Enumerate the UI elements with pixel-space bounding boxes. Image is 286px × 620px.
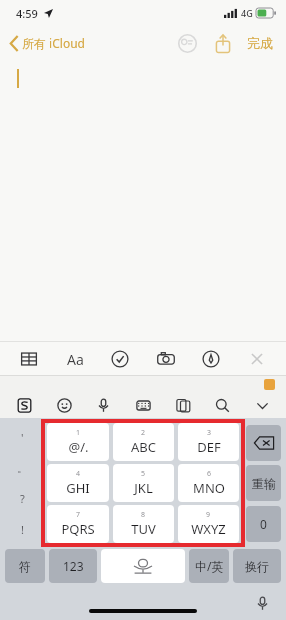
staticText: 5	[141, 469, 146, 479]
staticText: 2	[141, 428, 146, 438]
button[interactable]: Account	[264, 379, 275, 390]
staticText: 重输	[252, 476, 276, 491]
staticText: ?	[20, 491, 25, 506]
button[interactable]: 中/英	[189, 549, 229, 583]
staticText: 123	[63, 558, 84, 574]
button[interactable]: 换行	[233, 549, 281, 583]
staticText: JKL	[134, 479, 153, 497]
button[interactable]: Text format	[58, 344, 92, 374]
staticText: Aa	[67, 350, 84, 369]
button[interactable]: 1	[47, 423, 109, 461]
button[interactable]: 。	[2, 454, 43, 482]
staticText: @/.	[68, 438, 89, 456]
staticText: 。	[17, 461, 28, 475]
button[interactable]: Search	[206, 393, 238, 417]
staticText: PQRS	[61, 520, 95, 538]
staticText: !	[21, 522, 24, 537]
button[interactable]: Markup	[194, 344, 228, 374]
button[interactable]: 符	[5, 549, 45, 583]
staticText: GHI	[66, 479, 90, 497]
button[interactable]: Backspace	[246, 425, 281, 461]
button[interactable]: 2	[113, 423, 174, 461]
staticText: WXYZ	[191, 520, 226, 538]
button[interactable]: 完成	[243, 31, 277, 55]
button[interactable]: 8	[113, 505, 174, 543]
button[interactable]: Voice input	[252, 593, 272, 613]
button[interactable]: 4	[47, 464, 109, 502]
button[interactable]: 重输	[246, 465, 281, 501]
staticText: 符	[19, 559, 31, 574]
staticText: 9	[206, 510, 211, 520]
button[interactable]: 3	[178, 423, 239, 461]
button[interactable]: Checklist	[103, 344, 137, 374]
button[interactable]: !	[2, 515, 43, 543]
button[interactable]: 9	[178, 505, 239, 543]
staticText: 3	[207, 428, 212, 438]
button[interactable]: Space, voice input	[101, 549, 185, 583]
button[interactable]: Voice input	[87, 393, 119, 417]
button[interactable]: Camera	[149, 344, 183, 374]
staticText: ABC	[131, 438, 156, 456]
staticText: 1	[76, 428, 81, 438]
button[interactable]: Share	[209, 29, 237, 57]
staticText: 8	[141, 510, 146, 520]
staticText: '	[21, 430, 24, 445]
button[interactable]: Sogou	[8, 393, 40, 417]
staticText: 4	[76, 469, 81, 479]
staticText: TUV	[131, 520, 156, 538]
button[interactable]: 0	[246, 506, 281, 542]
staticText: 7	[76, 510, 81, 520]
button[interactable]: 7	[47, 505, 109, 543]
staticText: DEF	[197, 438, 221, 456]
staticText: 0	[260, 516, 267, 532]
button[interactable]: Emoji	[48, 393, 80, 417]
button[interactable]: Close keyboard	[240, 344, 274, 374]
button[interactable]: Keyboard layout	[127, 393, 159, 417]
button[interactable]: Collapse	[246, 393, 278, 417]
button[interactable]: '	[2, 423, 43, 451]
staticText: 4G	[241, 7, 253, 19]
staticText: 换行	[245, 559, 269, 574]
button[interactable]: Collaborate	[173, 29, 201, 57]
button[interactable]: 123	[49, 549, 97, 583]
button[interactable]: 所有 iCloud	[7, 31, 88, 55]
button[interactable]: Clipboard	[167, 393, 199, 417]
button[interactable]: Table	[12, 344, 46, 374]
staticText: 所有 iCloud	[22, 35, 85, 51]
staticText: 4:59	[16, 6, 38, 21]
button[interactable]: 5	[113, 464, 174, 502]
staticText: 完成	[247, 35, 273, 51]
button[interactable]: ?	[2, 484, 43, 512]
staticText: 6	[207, 469, 212, 479]
staticText: 中/英	[195, 558, 224, 574]
staticText: MNO	[193, 479, 225, 497]
button[interactable]: 6	[178, 464, 239, 502]
